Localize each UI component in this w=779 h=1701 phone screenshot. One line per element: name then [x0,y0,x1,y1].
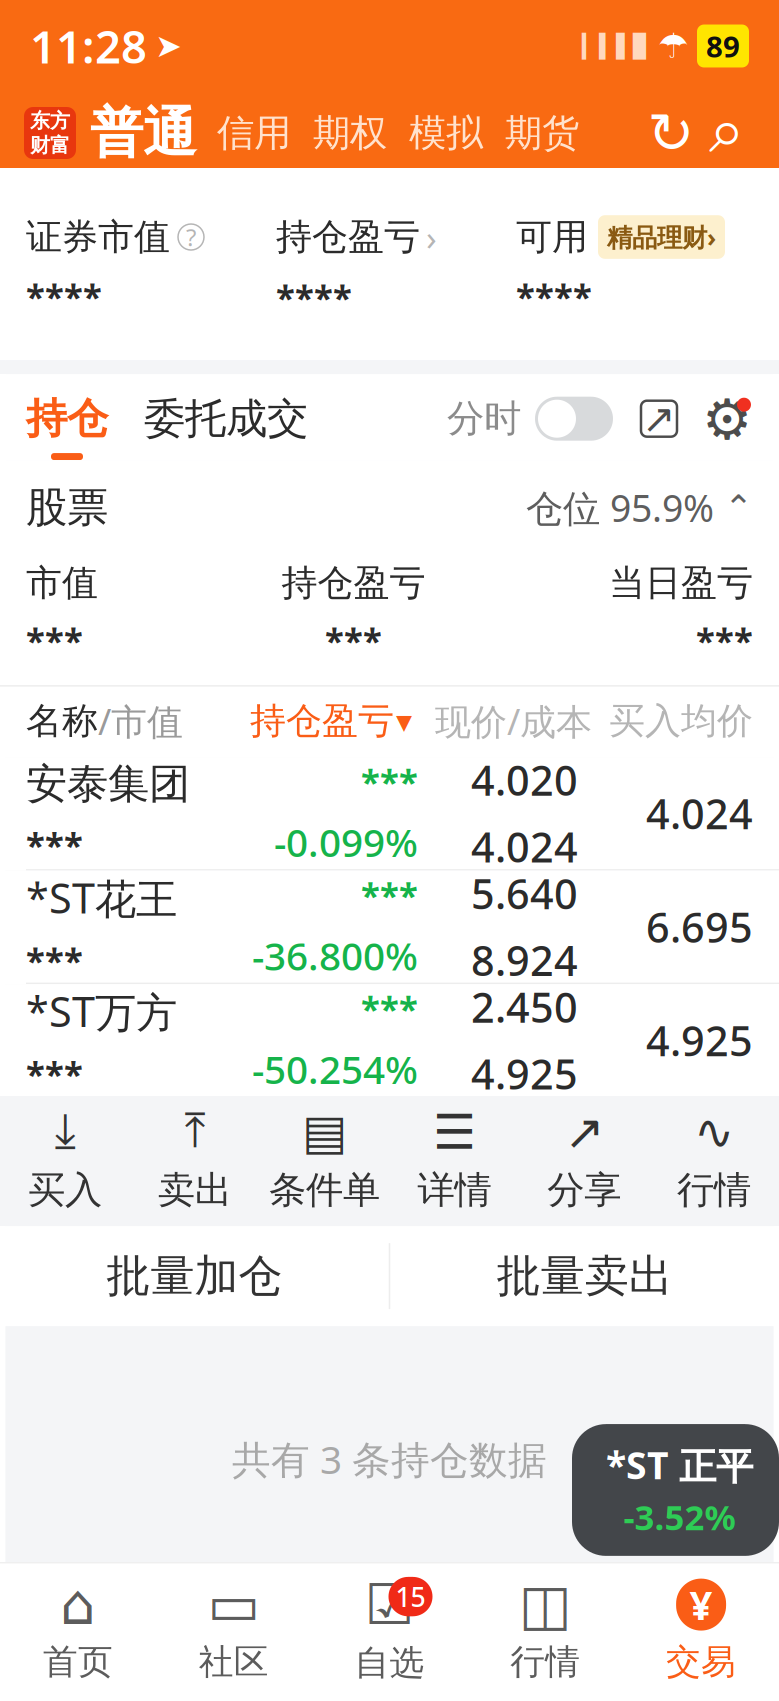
staticText: 4.024 [646,786,753,841]
staticText: **** [516,273,592,319]
button[interactable]: 分时 [447,396,613,458]
staticText: 仓位 95.9% [526,483,714,532]
staticText: 持仓 [26,393,108,444]
staticText: 首页 [43,1641,113,1683]
staticText: *** [696,617,753,663]
button[interactable]: 持仓盈亏 [250,699,412,743]
staticText: 6.695 [646,899,753,954]
button[interactable]: ▭ [156,1565,312,1699]
button[interactable]: 全屏 [613,397,681,457]
staticText: ▭ [207,1573,260,1636]
staticText: 股票 [26,482,108,533]
staticText: 持仓盈亏 [250,699,394,743]
staticText: 15 [395,1579,425,1614]
button[interactable]: ☰ [389,1091,519,1231]
button[interactable]: ¥ [623,1565,779,1699]
button[interactable]: 持仓盈亏 [276,214,437,260]
button[interactable]: 持仓 [26,393,108,460]
button[interactable]: 期权 [302,110,398,156]
staticText: 分享 [547,1167,621,1213]
staticText: 普通 [90,100,196,166]
staticText: 11:28 [30,16,147,76]
staticText: *ST花王 [26,870,177,925]
staticText: 东方 [30,108,70,133]
staticText: 4.925 [646,1013,753,1068]
button[interactable]: 安泰集团 [0,757,779,871]
staticText: 共有 3 条持仓数据 [232,1433,547,1485]
button[interactable]: ∿ [649,1091,779,1231]
staticText: 2.450 [471,979,578,1034]
button[interactable]: *ST花王 [0,871,779,984]
staticText: 行情 [677,1167,751,1213]
staticText: 名称 [26,699,98,743]
staticText: 自选 [354,1642,424,1684]
button[interactable]: 委托成交 [108,393,308,460]
button[interactable]: 仓位 95.9% [526,483,753,532]
staticText: 可用 [516,215,588,259]
button[interactable]: ▤ [260,1091,389,1231]
staticText: ⤒ [184,1109,205,1156]
staticText: ▾ [396,703,412,739]
staticText: ▤ [302,1105,347,1159]
button[interactable]: ⌂ [0,1565,156,1699]
staticText: 财富 [30,133,70,158]
staticText: ⌕ [709,102,745,164]
staticText: ☰ [433,1105,476,1159]
staticText: *** [26,821,83,867]
staticText: *** [361,985,418,1031]
staticText: ∿ [694,1105,734,1159]
staticText: -36.800% [252,930,418,981]
button[interactable]: 批量加仓 [0,1226,389,1326]
staticText: ↗ [642,396,676,441]
button[interactable]: 东方财富 [24,107,76,159]
button[interactable]: 期货 [494,110,590,156]
button[interactable]: 模拟 [398,110,494,156]
staticText: ◫ [519,1573,572,1636]
button[interactable]: ⤓ [0,1091,130,1231]
staticText: 证券市值 [26,215,170,259]
staticText: *** [26,617,83,663]
staticText: 期权 [313,110,387,156]
staticText: 批量卖出 [497,1249,673,1303]
staticText: *** [361,872,418,918]
staticText: 买入 [28,1167,102,1213]
button[interactable]: ↗ [519,1091,649,1231]
button[interactable]: 普通 [76,100,206,166]
staticText: 5.640 [471,866,578,921]
button[interactable]: *ST万方 [0,984,779,1096]
staticText: 4.925 [471,1046,578,1101]
button[interactable]: 批量卖出 [390,1226,779,1326]
staticText: ☂ [658,26,689,66]
staticText: ⤓ [54,1109,75,1156]
staticText: 当日盈亏 [609,561,753,605]
staticText: 社区 [199,1641,269,1683]
staticText: *** [361,758,418,804]
staticText: 详情 [417,1167,491,1213]
button[interactable]: 设置 [681,394,753,460]
staticText: 8.924 [471,933,578,987]
staticText: /市值 [98,697,183,745]
staticText: *ST 正平 [606,1440,753,1490]
button[interactable]: 信用 [206,110,302,156]
button[interactable]: *ST 正平 [572,1424,779,1556]
staticText: *** [26,1051,83,1097]
button[interactable]: 搜索 [699,105,755,161]
staticText: ▎▍▌▊ [582,33,650,59]
staticText: 行情 [510,1641,580,1683]
staticText: **** [276,274,352,320]
staticText: *ST万方 [26,983,177,1039]
button[interactable]: ☑ [312,1564,467,1700]
button[interactable]: ◫ [467,1565,623,1699]
staticText: 现价/成本 [435,697,592,745]
staticText: 卖出 [158,1167,232,1213]
staticText: 安泰集团 [26,759,190,809]
button[interactable]: 精品理财› [598,215,725,259]
button[interactable]: 刷新 [643,105,699,161]
staticText: ⚙ [702,388,752,451]
staticText: 交易 [666,1641,736,1683]
button[interactable]: ⤒ [130,1091,260,1231]
staticText: ↗ [564,1105,604,1159]
staticText: 持仓盈亏 [276,215,420,259]
staticText: 条件单 [269,1167,380,1213]
staticText: -50.254% [252,1043,418,1095]
